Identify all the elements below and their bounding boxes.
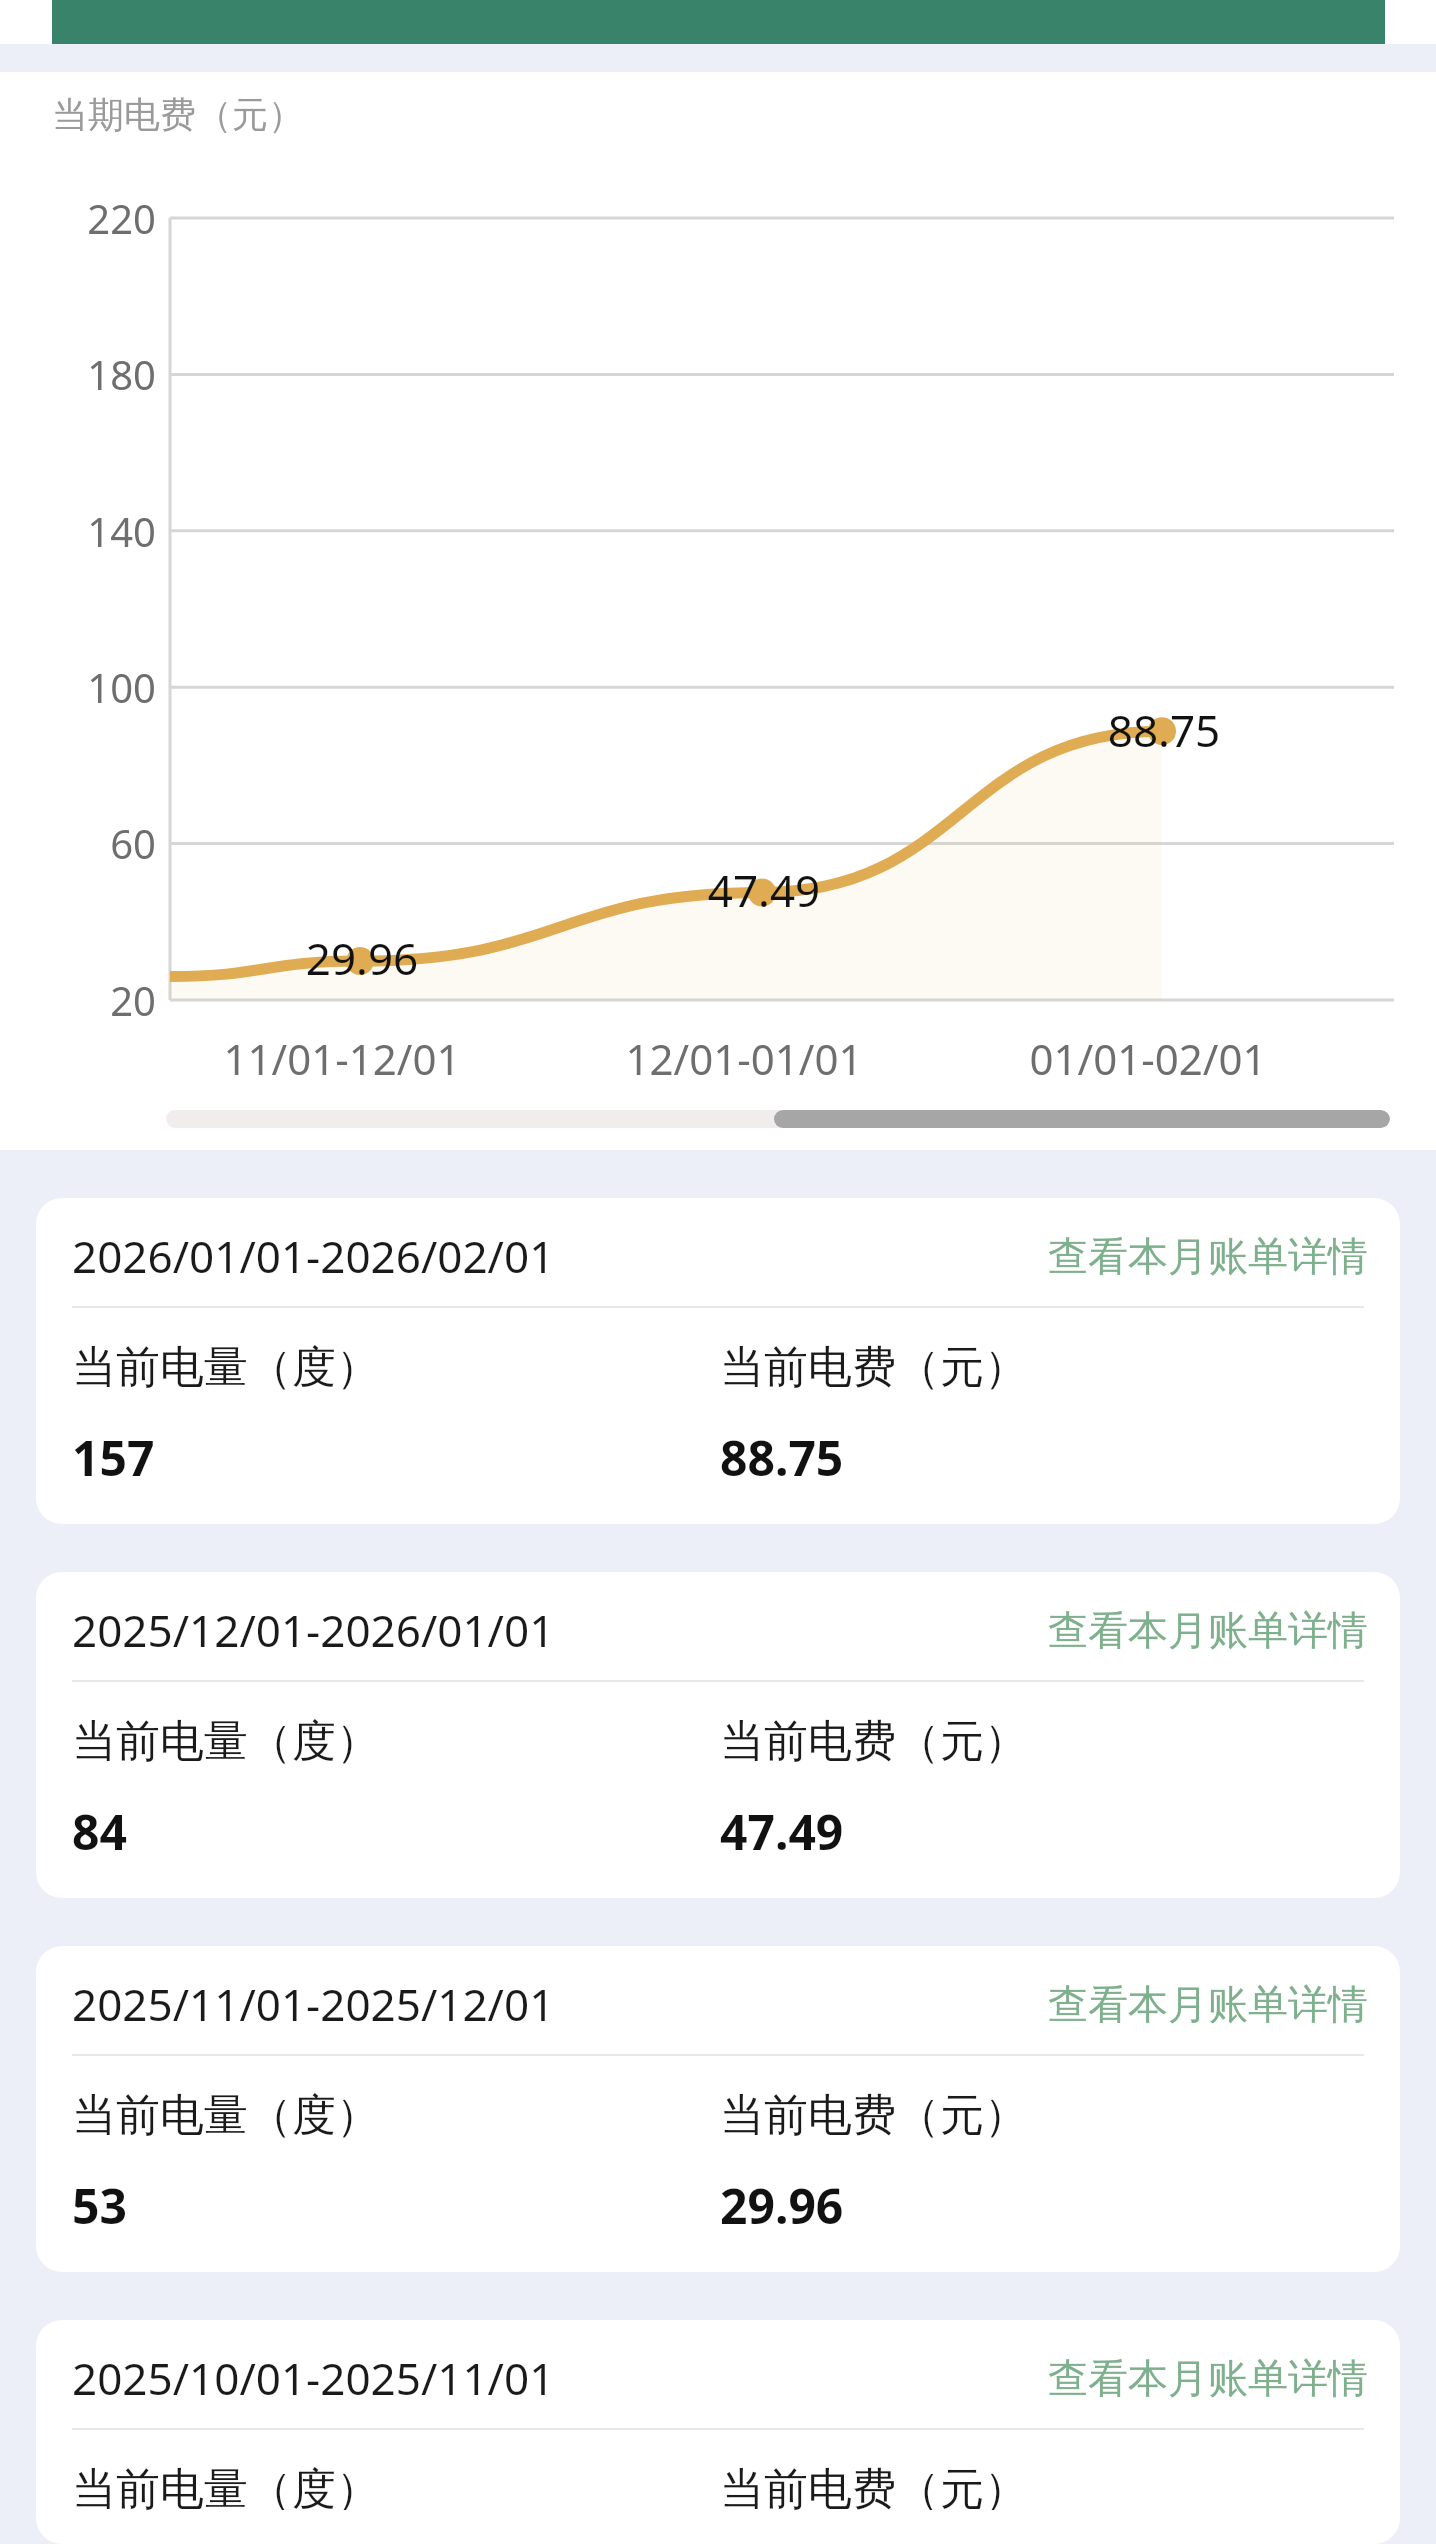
staticText: 查看本月账单详情	[1048, 1231, 1368, 1281]
staticText: 157	[72, 1425, 155, 1490]
staticText: 当前电费（元）	[720, 2462, 1028, 2510]
staticText: 53	[72, 2173, 127, 2238]
staticText: 2025/11/01-2025/12/01	[72, 1974, 555, 2034]
button[interactable]: 查看本月账单详情	[1048, 1231, 1368, 1281]
staticText: 100	[36, 660, 156, 714]
staticText: 查看本月账单详情	[1048, 1605, 1368, 1655]
button[interactable]: 2025/12/01-2026/01/01	[36, 1572, 1400, 1898]
staticText: 29.96	[242, 928, 482, 988]
staticText: 180	[36, 347, 156, 401]
staticText: 11/01-12/01	[172, 1030, 512, 1087]
button[interactable]: 查看本月账单详情	[1048, 2353, 1368, 2403]
staticText: 当前电费（元）	[720, 1340, 1028, 1395]
staticText: 当期电费（元）	[52, 92, 304, 137]
staticText: 当前电量（度）	[72, 2088, 380, 2143]
staticText: 220	[36, 191, 156, 245]
staticText: 60	[36, 816, 156, 870]
staticText: 查看本月账单详情	[1048, 1979, 1368, 2029]
button[interactable]: 2026/01/01-2026/02/01	[36, 1198, 1400, 1524]
staticText: 20	[36, 973, 156, 1027]
staticText: 84	[72, 1799, 127, 1864]
staticText: 47.49	[720, 1799, 844, 1864]
staticText: 88.75	[1044, 700, 1284, 760]
button[interactable]: 2025/10/01-2025/11/01	[36, 2320, 1400, 2544]
staticText: 当前电费（元）	[720, 1714, 1028, 1769]
staticText: 140	[36, 504, 156, 558]
staticText: 当前电量（度）	[72, 1340, 380, 1395]
staticText: 29.96	[720, 2173, 844, 2238]
staticText: 2026/01/01-2026/02/01	[72, 1226, 555, 1286]
button[interactable]: 查看本月账单详情	[1048, 1979, 1368, 2029]
staticText: 88.75	[720, 1425, 844, 1490]
button[interactable]: 查看本月账单详情	[1048, 1605, 1368, 1655]
staticText: 47.49	[644, 860, 884, 920]
staticText: 当前电费（元）	[720, 2088, 1028, 2143]
button[interactable]: 2025/11/01-2025/12/01	[36, 1946, 1400, 2272]
staticText: 01/01-02/01	[978, 1030, 1318, 1087]
staticText: 2025/12/01-2026/01/01	[72, 1600, 555, 1660]
staticText: 当前电量（度）	[72, 2462, 380, 2510]
staticText: 12/01-01/01	[574, 1030, 914, 1087]
staticText: 2025/10/01-2025/11/01	[72, 2348, 555, 2408]
staticText: 当前电量（度）	[72, 1714, 380, 1769]
staticText: 查看本月账单详情	[1048, 2353, 1368, 2403]
